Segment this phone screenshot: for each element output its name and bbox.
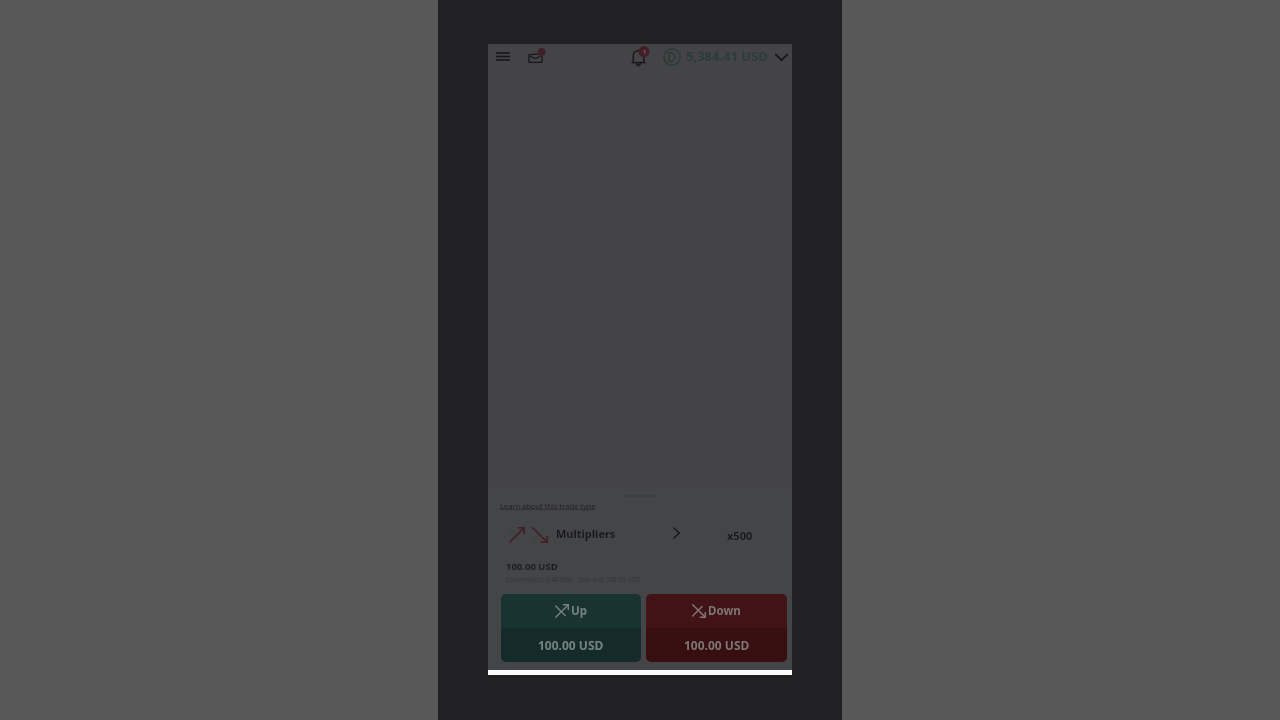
button[interactable]: Up: [501, 594, 641, 662]
button[interactable]: Down: [646, 594, 787, 662]
button[interactable]: Multipliers: [488, 518, 694, 548]
staticText: 5,384.41 USD: [686, 47, 768, 65]
staticText: Up: [571, 603, 587, 619]
staticText: x500: [727, 528, 753, 543]
button[interactable]: Menu: [492, 46, 512, 66]
staticText: Commission: 0.48 USD Stop out: 100.00 US…: [506, 575, 640, 584]
button[interactable]: Switch account: [772, 48, 790, 66]
staticText: 100.00 USD: [684, 637, 750, 653]
staticText: 100.00 USD: [506, 560, 558, 573]
button[interactable]: Inbox: [525, 46, 545, 66]
staticText: 100.00 USD: [538, 637, 604, 653]
staticText: Down: [708, 603, 741, 619]
button[interactable]: Notifications: [628, 46, 650, 68]
staticText: 1: [643, 48, 647, 55]
staticText: Multipliers: [556, 526, 616, 541]
button[interactable]: Learn about this trade type: [500, 501, 596, 511]
button[interactable]: x500: [694, 518, 792, 548]
button[interactable]: 5,384.41 USD: [660, 45, 750, 69]
